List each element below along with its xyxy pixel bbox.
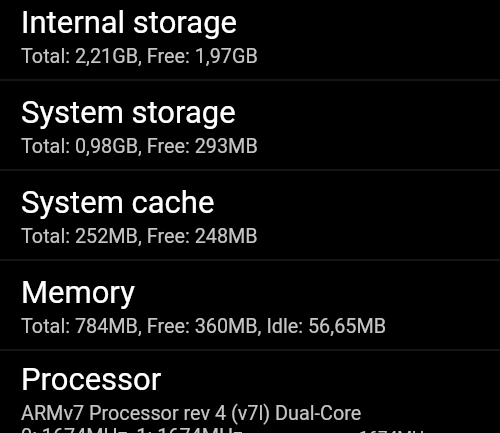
staticText: Total: 784MB, Free: 360MB, Idle: 56,65MB [21, 315, 387, 338]
staticText: Memory [21, 274, 135, 310]
staticText: Total: 0,98GB, Free: 293MB [21, 135, 258, 158]
staticText: System storage [21, 94, 236, 130]
staticText: 0: 1674MHz, 1: 1674MHz [21, 425, 243, 433]
staticText: Total: 2,21GB, Free: 1,97GB [21, 45, 258, 68]
button[interactable]: Memory [0, 260, 500, 350]
staticText: 1674MHz [359, 427, 433, 433]
staticText: System cache [21, 184, 215, 220]
button[interactable]: System cache [0, 170, 500, 260]
staticText: ARMv7 Processor rev 4 (v7l) Dual-Core [21, 402, 362, 425]
staticText: Internal storage [21, 4, 237, 40]
button[interactable]: System storage [0, 80, 500, 170]
staticText: Total: 252MB, Free: 248MB [21, 225, 258, 248]
button[interactable]: Processor [0, 350, 500, 433]
staticText: Processor [21, 361, 162, 397]
button[interactable]: Internal storage [0, 0, 500, 80]
